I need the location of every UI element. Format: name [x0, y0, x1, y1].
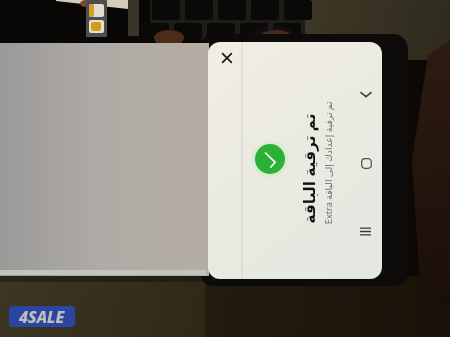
button[interactable]: Home — [354, 151, 378, 175]
button[interactable]: Back — [354, 82, 378, 106]
button[interactable]: Close — [215, 46, 239, 70]
staticText: 4SALE — [19, 306, 65, 327]
button[interactable]: Recent apps — [353, 219, 377, 243]
